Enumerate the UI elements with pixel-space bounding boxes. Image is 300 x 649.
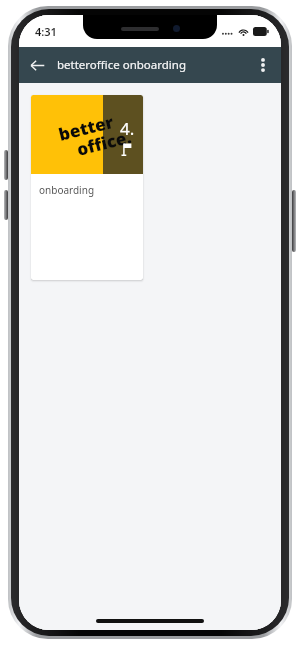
staticText: onboarding	[39, 183, 95, 197]
staticText: better	[56, 110, 116, 146]
staticText: 4.	[120, 117, 135, 140]
staticText: betteroffice onboarding	[57, 57, 186, 73]
staticText: office.	[74, 125, 133, 161]
button[interactable]: better	[31, 95, 143, 280]
staticText: 4:31	[35, 24, 57, 39]
button[interactable]: More options	[245, 47, 281, 83]
button[interactable]: Back	[19, 47, 55, 83]
